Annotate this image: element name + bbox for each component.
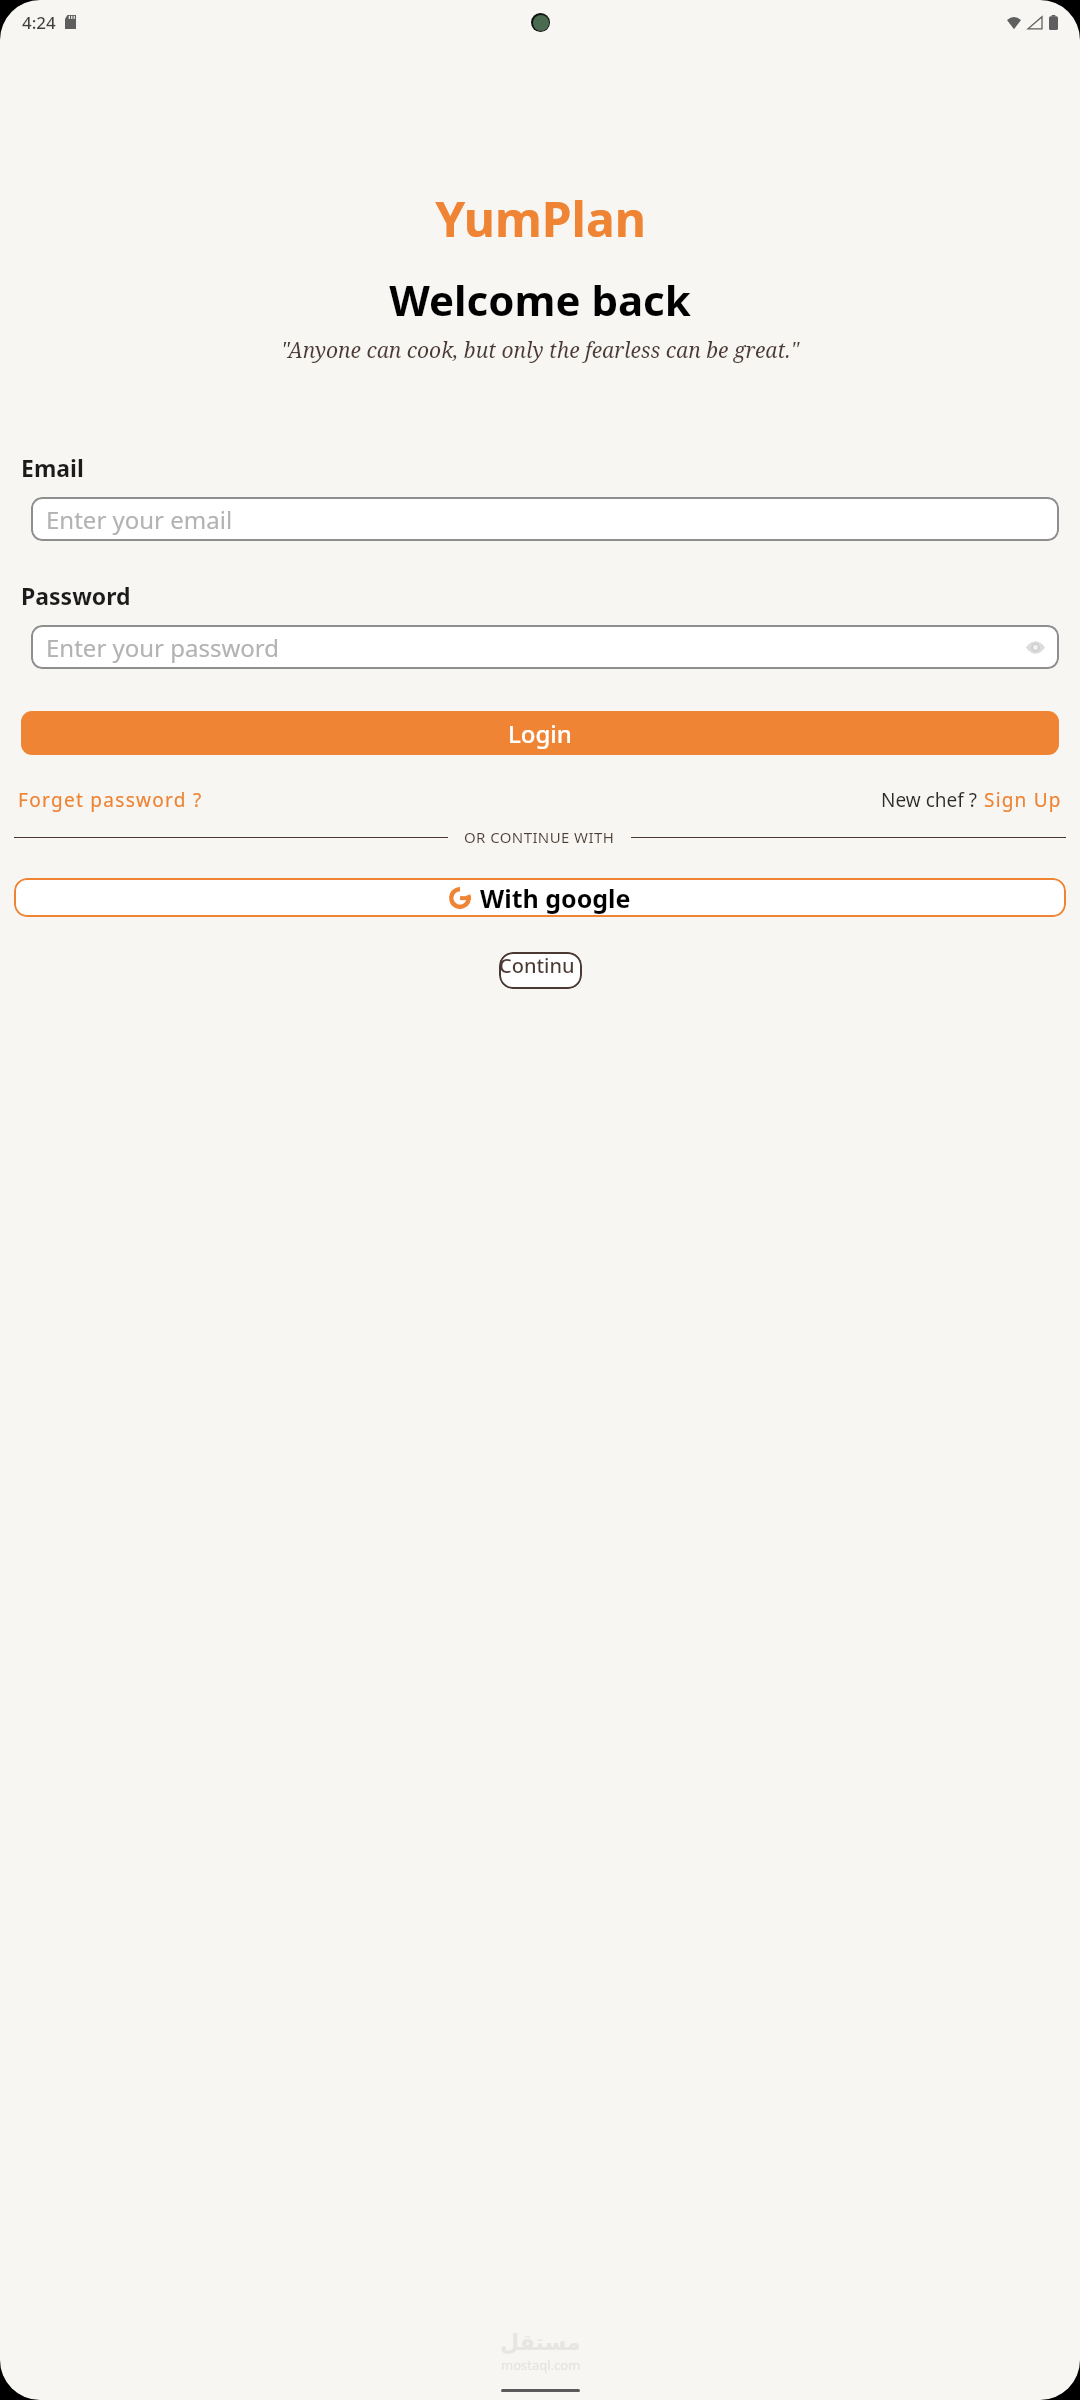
staticText: mostaql.com xyxy=(501,2356,581,2374)
staticText: 4:24 xyxy=(22,11,56,34)
staticText: New chef ? xyxy=(881,787,977,813)
staticText: Sign Up xyxy=(984,787,1062,813)
button[interactable]: Forget password ? xyxy=(18,787,203,813)
staticText: Forget password ? xyxy=(18,787,203,813)
staticText: Enter your password xyxy=(46,631,280,664)
staticText: Login xyxy=(508,717,572,750)
staticText: Email xyxy=(21,452,84,483)
staticText: مستقل xyxy=(500,2330,581,2356)
button[interactable]: Login xyxy=(21,711,1059,755)
button[interactable]: Email input xyxy=(31,497,1059,541)
button[interactable]: Show password xyxy=(1023,635,1047,659)
staticText: Enter your email xyxy=(46,503,233,536)
staticText: Continue as guest xyxy=(499,952,582,989)
staticText: YumPlan xyxy=(435,186,646,251)
staticText: OR CONTINUE WITH xyxy=(464,827,615,847)
button[interactable]: With google xyxy=(14,878,1066,917)
staticText: Password xyxy=(21,580,131,611)
button[interactable]: Sign Up xyxy=(984,787,1062,813)
button[interactable]: Password input xyxy=(31,625,1059,669)
button[interactable]: Continue as guest xyxy=(499,952,582,989)
staticText: Welcome back xyxy=(389,271,691,328)
staticText: With google xyxy=(480,881,631,915)
staticText: "Anyone can cook, but only the fearless … xyxy=(281,336,799,365)
